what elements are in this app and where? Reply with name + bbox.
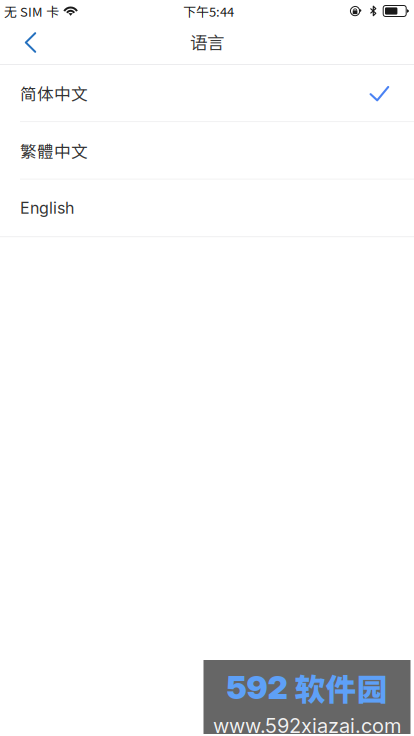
staticText: 无 SIM 卡 (4, 2, 59, 20)
button[interactable]: 繁體中文 (0, 122, 414, 180)
staticText: 语言 (190, 29, 224, 54)
button[interactable]: English (0, 180, 414, 237)
staticText: 软件园 (294, 665, 387, 710)
button[interactable]: Back (11, 22, 51, 64)
button[interactable]: 简体中文 (0, 65, 414, 122)
staticText: 下午5:44 (183, 2, 234, 20)
staticText: English (20, 198, 74, 218)
staticText: 简体中文 (20, 81, 88, 105)
staticText: 繁體中文 (20, 138, 88, 162)
staticText: www.592xiazai.com (213, 714, 401, 736)
staticText: 592 (226, 668, 287, 707)
